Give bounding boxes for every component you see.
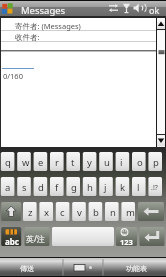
staticText: a: [5, 181, 11, 194]
staticText: 英/注: [26, 233, 45, 244]
button[interactable]: Connectivity: [106, 0, 120, 17]
staticText: 寄件者: (Messages): [15, 21, 81, 31]
button[interactable]: Keyboard: [63, 257, 101, 277]
staticText: y: [87, 156, 92, 169]
staticText: .!?: [151, 183, 158, 193]
staticText: t: [71, 156, 75, 169]
staticText: k: [120, 181, 126, 194]
button[interactable]: Signal strength: [120, 0, 132, 17]
button[interactable]: 寄件者: [1, 18, 156, 30]
staticText: m: [126, 206, 135, 219]
staticText: 0/160: [3, 71, 23, 81]
staticText: 功能表: [126, 264, 147, 273]
staticText: 傳送: [20, 264, 34, 273]
staticText: l: [137, 181, 140, 194]
staticText: b: [93, 206, 99, 219]
staticText: 123: [120, 237, 133, 247]
button[interactable]: Start menu: [0, 0, 18, 17]
staticText: e: [38, 156, 44, 169]
staticText: z: [28, 206, 33, 219]
staticText: w: [22, 156, 30, 169]
button[interactable]: ok: [146, 0, 166, 17]
button[interactable]: Scroll up: [157, 18, 166, 30]
staticText: p: [153, 156, 159, 169]
button[interactable]: Scroll down: [157, 134, 166, 147]
staticText: ok: [149, 4, 160, 16]
button[interactable]: 功能表: [102, 257, 166, 277]
staticText: q: [5, 156, 11, 169]
staticText: h: [87, 181, 93, 194]
staticText: o: [137, 156, 143, 169]
staticText: s: [22, 181, 27, 194]
button[interactable]: 收件者: [1, 30, 156, 41]
staticText: c: [60, 206, 65, 219]
staticText: Messages: [21, 4, 66, 17]
staticText: n: [110, 206, 116, 219]
button[interactable]: Volume: [132, 0, 145, 17]
staticText: i: [120, 156, 123, 169]
button[interactable]: 傳送: [0, 257, 62, 277]
staticText: x: [44, 206, 50, 219]
staticText: f: [55, 181, 59, 194]
staticText: v: [77, 206, 82, 219]
staticText: u: [104, 156, 110, 169]
staticText: g: [71, 181, 77, 194]
staticText: j: [104, 181, 107, 194]
staticText: 收件者:: [15, 32, 40, 42]
staticText: d: [38, 181, 44, 194]
staticText: abc: [5, 236, 19, 247]
staticText: r: [55, 156, 59, 169]
